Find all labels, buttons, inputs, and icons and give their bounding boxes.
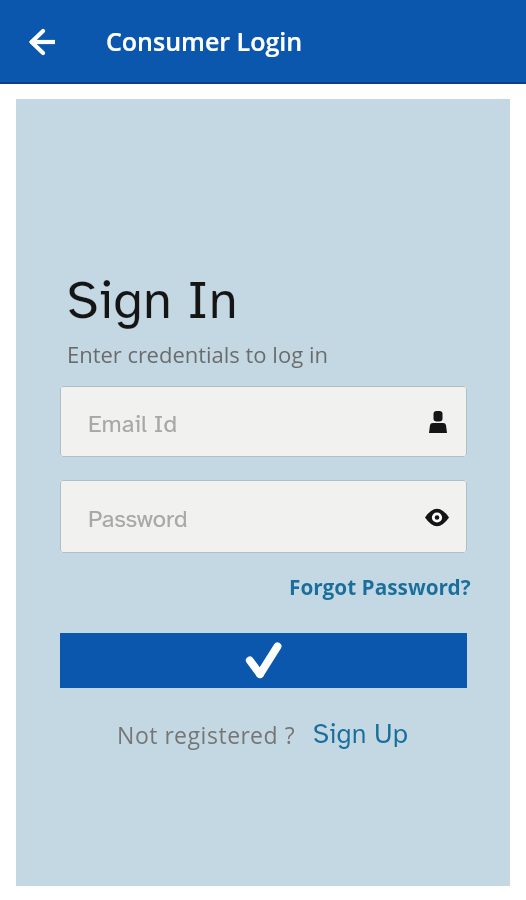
staticText: Enter credentials to log in	[67, 339, 329, 369]
button[interactable]: Sign In	[60, 633, 467, 688]
staticText: Forgot Password?	[289, 573, 471, 601]
button[interactable]: Sign Up	[313, 717, 408, 750]
button[interactable]: Email Id	[60, 386, 467, 457]
staticText: Password	[88, 504, 188, 534]
button[interactable]: Password	[60, 480, 467, 553]
staticText: Sign In	[67, 268, 238, 334]
staticText: Not registered ?	[117, 719, 296, 750]
button[interactable]: Show password	[422, 502, 452, 532]
button[interactable]: Back	[16, 16, 68, 68]
button[interactable]: Forgot Password?	[287, 571, 473, 603]
staticText: Email Id	[88, 409, 178, 439]
staticText: Consumer Login	[106, 24, 303, 58]
staticText: Sign Up	[313, 717, 408, 750]
